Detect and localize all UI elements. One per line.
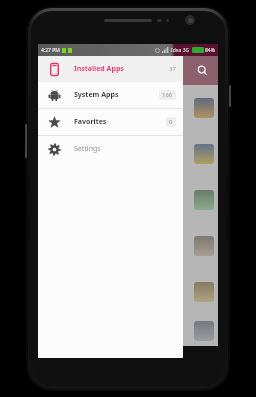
staticText: 37 <box>169 65 176 73</box>
staticText: Idea 3G <box>171 47 190 54</box>
staticText: Installed Apps <box>74 64 124 74</box>
staticText: Settings <box>74 144 101 154</box>
button[interactable]: Settings <box>38 136 183 162</box>
staticText: System Apps <box>74 90 119 100</box>
button[interactable]: Installed Apps <box>38 56 183 82</box>
button[interactable]: System Apps <box>38 82 183 108</box>
button[interactable]: Favorites <box>38 109 183 135</box>
staticText: 4:27 PM <box>41 47 60 54</box>
button[interactable]: Search <box>186 56 218 85</box>
staticText: 84% <box>205 47 215 54</box>
staticText: 166 <box>162 91 173 99</box>
staticText: 0 <box>169 118 173 126</box>
staticText: Favorites <box>74 117 107 127</box>
